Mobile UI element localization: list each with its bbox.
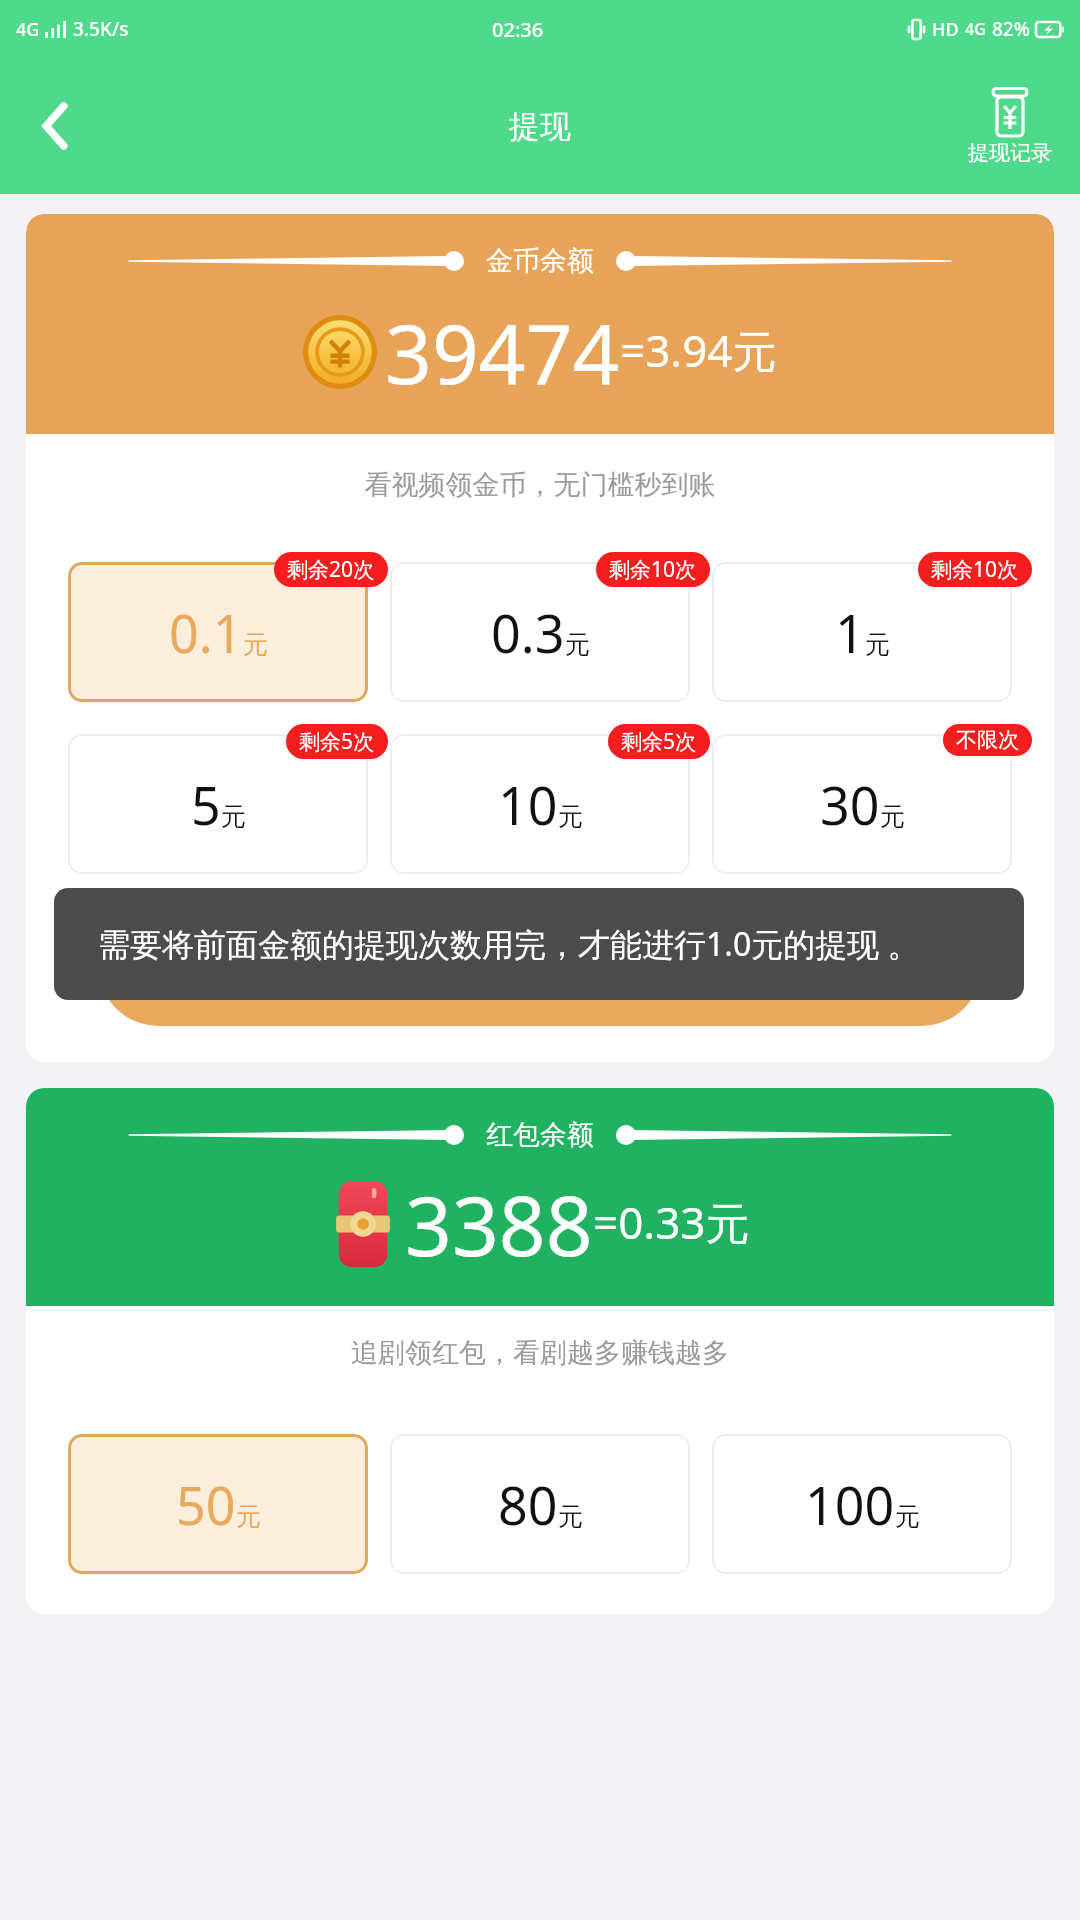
button[interactable]: 100 xyxy=(712,1434,1012,1574)
staticText: 红包余额 xyxy=(486,1118,594,1152)
staticText: 立即提现 xyxy=(452,938,628,993)
staticText: 元 xyxy=(236,1501,261,1532)
staticText: 3388 xyxy=(405,1168,593,1280)
staticText: =3.94元 xyxy=(620,320,777,380)
staticText: 50 xyxy=(176,1469,236,1540)
staticText: 4G xyxy=(965,18,986,40)
staticText: 30 xyxy=(820,769,880,840)
staticText: 02:36 xyxy=(492,16,544,43)
staticText: 需要将前面金额的提现次数用完，才能进行1.0元的提现 。 xyxy=(98,922,920,966)
staticText: 元 xyxy=(558,1501,583,1532)
button[interactable]: 1 xyxy=(712,562,1012,702)
staticText: =0.33元 xyxy=(593,1192,750,1252)
staticText: 元 xyxy=(565,629,590,660)
staticText: 金币余额 xyxy=(486,244,594,278)
button[interactable]: 0.3 xyxy=(390,562,690,702)
staticText: 提现记录 xyxy=(968,140,1052,166)
button[interactable]: Back xyxy=(18,88,94,164)
staticText: 不限次 xyxy=(956,727,1019,753)
staticText: 100 xyxy=(805,1469,895,1540)
staticText: 元 xyxy=(895,1501,920,1532)
staticText: 5 xyxy=(191,769,221,840)
staticText: 追剧领红包，看剧越多赚钱越多 xyxy=(26,1336,1054,1370)
staticText: 看视频领金币，无门槛秒到账 xyxy=(26,468,1054,502)
staticText: 0.1 xyxy=(169,597,243,668)
button[interactable]: 5 xyxy=(68,734,368,874)
staticText: 元 xyxy=(865,629,890,660)
staticText: 元 xyxy=(880,801,905,832)
staticText: 39474 xyxy=(385,296,620,408)
staticText: 剩余5次 xyxy=(621,727,697,756)
staticText: 0.3 xyxy=(491,597,565,668)
staticText: HD xyxy=(932,17,959,42)
staticText: 剩余10次 xyxy=(609,555,697,584)
staticText: 剩余5次 xyxy=(299,727,375,756)
staticText: 1 xyxy=(835,597,865,668)
staticText: 剩余20次 xyxy=(287,555,375,584)
staticText: 元 xyxy=(243,629,268,660)
staticText: 4G xyxy=(16,17,40,42)
staticText: 元 xyxy=(558,801,583,832)
button[interactable]: 立即提现 xyxy=(98,904,982,1026)
button[interactable]: 30 xyxy=(712,734,1012,874)
button[interactable]: 10 xyxy=(390,734,690,874)
staticText: 80 xyxy=(498,1469,558,1540)
staticText: 提现 xyxy=(509,107,571,146)
button[interactable]: 50 xyxy=(68,1434,368,1574)
button[interactable]: 提现记录 xyxy=(962,83,1058,170)
staticText: 3.5K/s xyxy=(73,16,129,42)
staticText: 剩余10次 xyxy=(931,555,1019,584)
button[interactable]: 80 xyxy=(390,1434,690,1574)
staticText: 82% xyxy=(992,16,1030,42)
button[interactable]: 0.1 xyxy=(68,562,368,702)
staticText: 元 xyxy=(221,801,246,832)
staticText: 10 xyxy=(498,769,558,840)
